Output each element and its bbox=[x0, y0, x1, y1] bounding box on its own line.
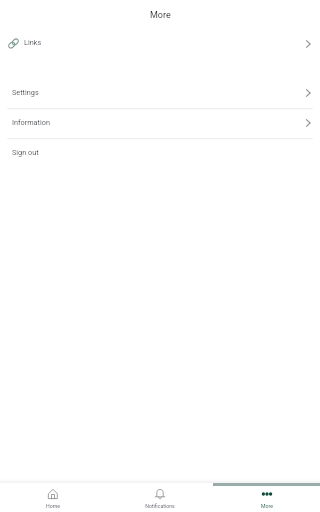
staticText: More bbox=[150, 10, 171, 21]
staticText: Links bbox=[24, 38, 42, 47]
button[interactable]: Information bbox=[0, 108, 320, 138]
staticText: More bbox=[261, 503, 273, 509]
staticText: Settings bbox=[12, 88, 39, 97]
staticText: Information bbox=[12, 118, 50, 127]
staticText: Sign out bbox=[12, 148, 39, 157]
button[interactable]: Notifications bbox=[106, 483, 213, 512]
staticText: Notifications bbox=[145, 503, 175, 509]
staticText: Home bbox=[46, 503, 60, 509]
button[interactable]: Sign out bbox=[0, 138, 320, 168]
button[interactable]: Settings bbox=[0, 78, 320, 108]
button[interactable]: Links bbox=[0, 29, 320, 58]
button[interactable]: Home bbox=[0, 483, 106, 512]
button[interactable]: More bbox=[213, 483, 320, 512]
